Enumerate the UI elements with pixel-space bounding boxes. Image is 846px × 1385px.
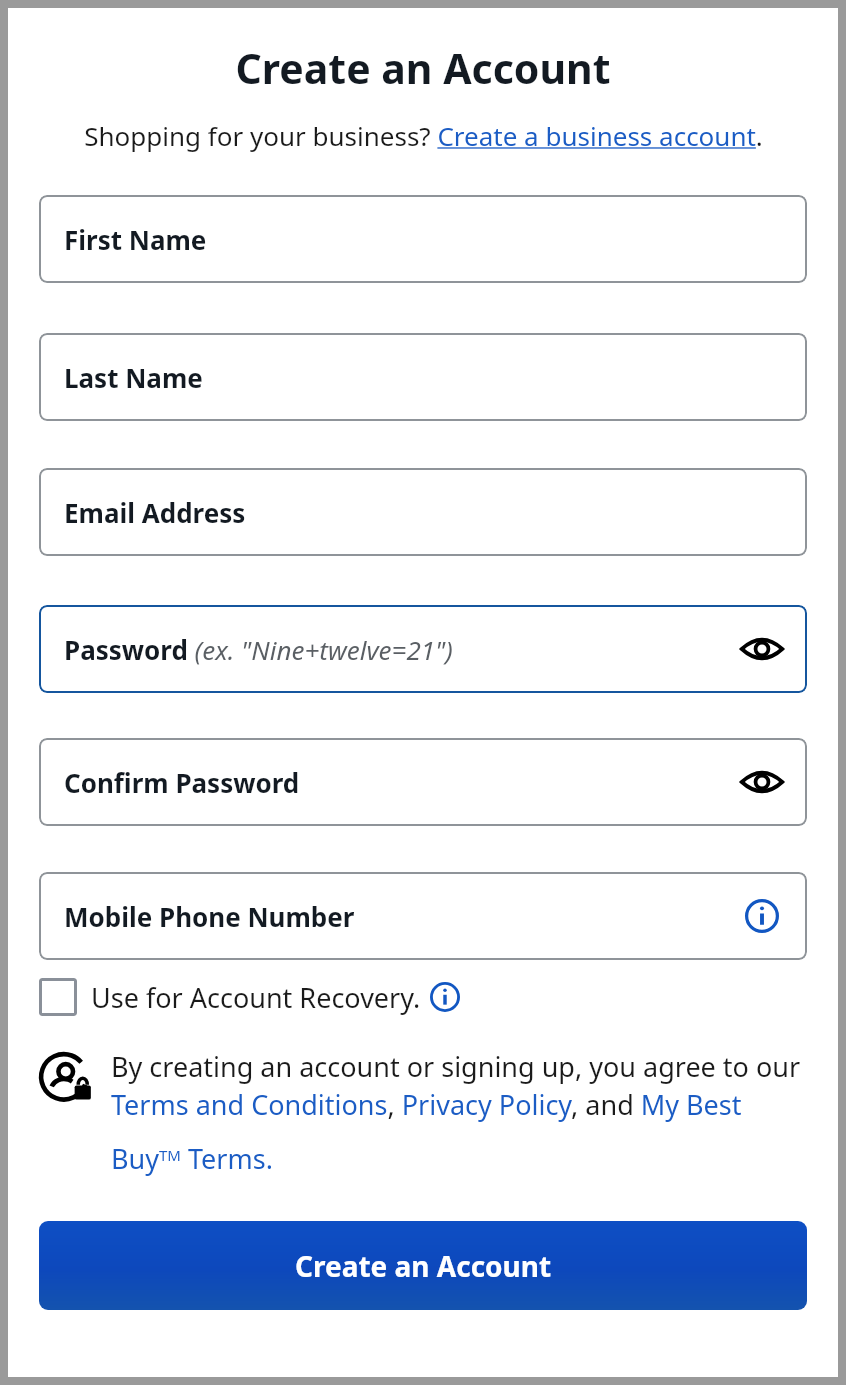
staticText: First Name [64,222,207,257]
staticText: Password (ex. "Nine+twelve=21") [64,632,453,667]
button[interactable]: Mobile phone number info [739,893,785,939]
staticText: Email Address [64,495,246,530]
button[interactable]: Last Name [39,333,807,421]
button[interactable]: Email Address [39,468,807,556]
staticText: Confirm Password [64,765,300,800]
button[interactable]: Show password [739,626,785,672]
button[interactable]: By creating an account or signing up, yo… [111,1048,807,1177]
staticText: Use for Account Recovery. [91,979,421,1016]
button[interactable]: Shopping for your business? Create a bus… [84,118,763,153]
button[interactable]: Password (ex. "Nine+twelve=21") [39,605,807,693]
staticText: Last Name [64,360,203,395]
button[interactable]: Use for Account Recovery. [39,978,460,1016]
staticText: Mobile Phone Number [64,899,355,934]
staticText: Create an Account [8,40,838,96]
button[interactable]: Confirm Password [39,738,807,826]
button[interactable]: Account recovery info [430,982,460,1012]
button[interactable]: Show confirm password [739,759,785,805]
staticText: Create an Account [295,1247,552,1285]
button[interactable]: First Name [39,195,807,283]
button[interactable]: Create an Account [39,1221,807,1310]
button[interactable]: Mobile Phone Number [39,872,807,960]
